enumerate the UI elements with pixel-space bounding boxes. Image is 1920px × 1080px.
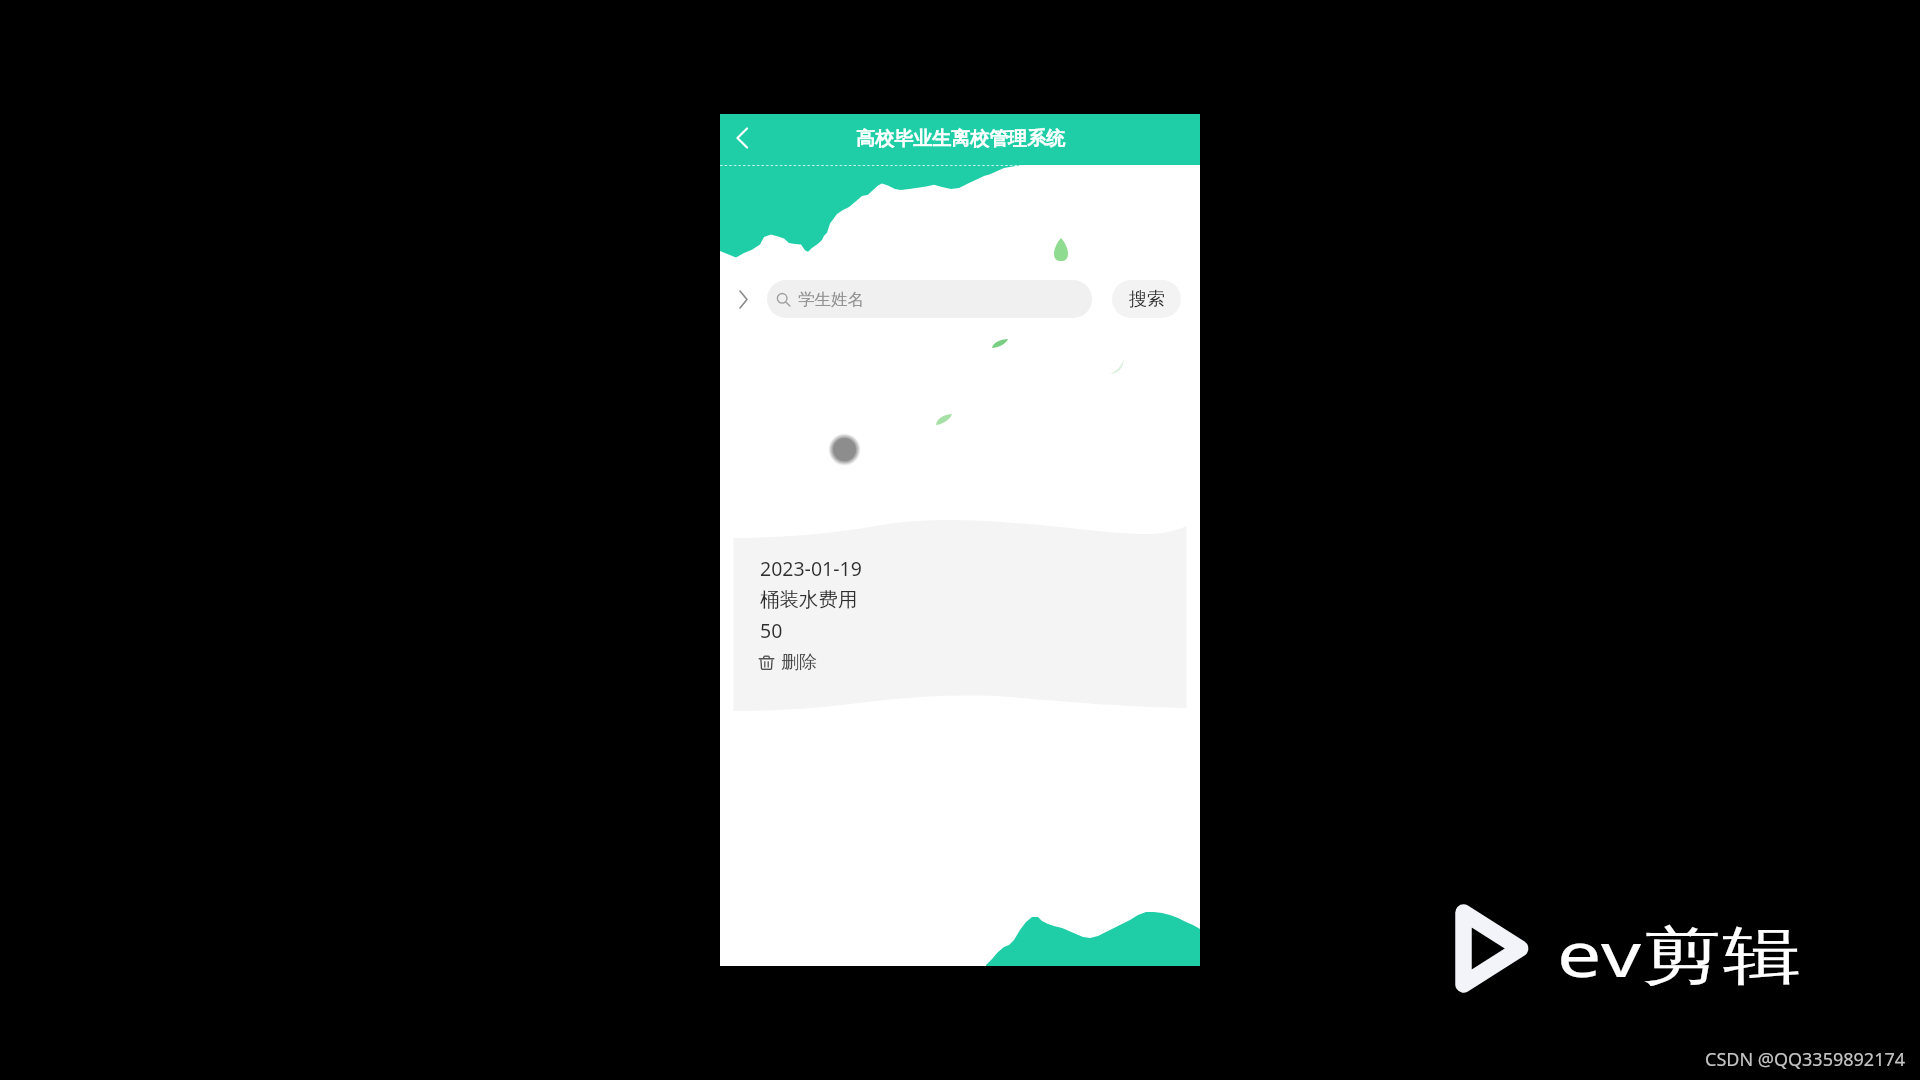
staticText: 学生姓名 <box>798 289 864 310</box>
staticText: 删除 <box>781 651 817 674</box>
staticText: ev剪辑 <box>1557 911 1803 996</box>
button[interactable]: 2023-01-19 <box>758 543 1162 713</box>
button[interactable]: 学生姓名 <box>767 280 1092 318</box>
staticText: 搜索 <box>1129 288 1165 311</box>
button[interactable]: 搜索 <box>1112 280 1181 318</box>
staticText: 桶装水费用 <box>760 587 858 612</box>
button[interactable]: 删除 <box>758 651 817 674</box>
button[interactable]: Expand filters <box>720 279 767 319</box>
staticText: 高校毕业生离校管理系统 <box>856 127 1065 151</box>
staticText: 50 <box>760 617 783 644</box>
staticText: 2023-01-19 <box>760 555 862 582</box>
staticText: CSDN @QQ3359892174 <box>1705 1047 1906 1072</box>
button[interactable]: Back <box>720 116 764 160</box>
